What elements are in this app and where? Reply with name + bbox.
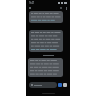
button[interactable]: Send: [58, 83, 62, 87]
button[interactable]: More options: [64, 6, 68, 10]
button[interactable]: Voice message: [63, 83, 67, 87]
button[interactable]: [29, 82, 57, 88]
button[interactable]: Search: [59, 6, 63, 10]
button[interactable]: [29, 30, 63, 52]
button[interactable]: [29, 11, 63, 23]
button[interactable]: [28, 58, 63, 77]
button[interactable]: Back: [28, 6, 32, 10]
staticText: 9:41: [29, 1, 35, 5]
